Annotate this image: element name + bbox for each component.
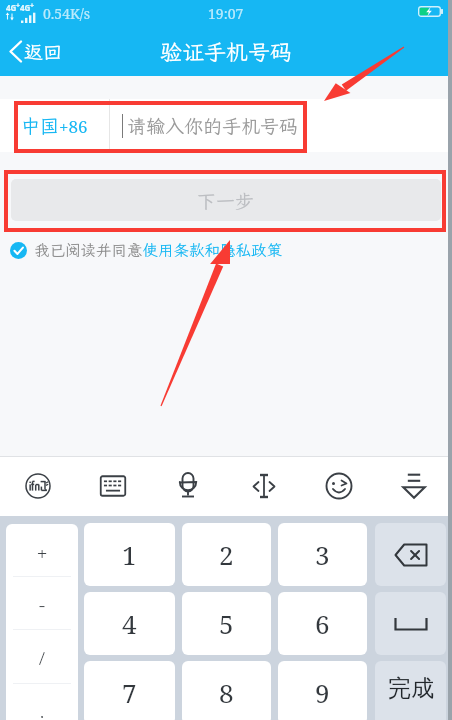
staticText: + (16, 1, 21, 11)
staticText: 3 (315, 537, 330, 572)
button[interactable]: 我已阅读并同意使用条款和隐私政策 (10, 240, 283, 260)
button[interactable]: Hide keyboard (377, 457, 451, 515)
staticText: 中国+86 (21, 113, 88, 138)
button[interactable]: Move cursor (227, 457, 301, 515)
button[interactable]: Delete (375, 523, 446, 586)
staticText: 0.54K/s (43, 4, 91, 23)
staticText: 4G (6, 2, 17, 13)
button[interactable]: 返回 (0, 26, 75, 76)
staticText: 6 (315, 606, 330, 641)
staticText: 7 (122, 675, 137, 710)
staticText: + (37, 540, 48, 562)
staticText: 4 (122, 606, 137, 641)
button[interactable]: Space (375, 592, 446, 655)
button[interactable]: iFlytek input method (1, 457, 75, 515)
button[interactable]: 8 (182, 661, 271, 720)
staticText: - (39, 593, 45, 615)
staticText: + (30, 1, 35, 11)
staticText: 返回 (24, 39, 63, 64)
staticText: 1 (122, 537, 137, 572)
button[interactable]: - (6, 577, 78, 630)
staticText: 8 (219, 675, 234, 710)
staticText: 下一步 (197, 188, 255, 213)
staticText: . (39, 700, 45, 720)
staticText: 4G (20, 2, 31, 13)
button[interactable]: 下一步 (11, 179, 441, 221)
button[interactable]: 2 (182, 523, 271, 586)
staticText: 5 (219, 606, 234, 641)
button[interactable]: Emoji (302, 457, 376, 515)
staticText: 19:07 (208, 4, 244, 23)
staticText: 我已阅读并同意使用条款和隐私政策 (34, 240, 283, 260)
button[interactable]: 5 (182, 592, 271, 655)
staticText: 完成 (388, 674, 434, 703)
button[interactable]: 7 (84, 661, 175, 720)
button[interactable]: 4 (84, 592, 175, 655)
staticText: 请输入你的手机号码 (127, 113, 299, 138)
button[interactable]: . (6, 684, 78, 720)
button[interactable]: 1 (84, 523, 175, 586)
button[interactable]: 3 (278, 523, 367, 586)
button[interactable]: / (6, 630, 78, 684)
staticText: 验证手机号码 (160, 37, 293, 66)
staticText: 2 (219, 537, 234, 572)
button[interactable]: Voice input (151, 457, 225, 515)
button[interactable]: + (6, 524, 78, 577)
button[interactable]: 完成 (375, 661, 446, 720)
button[interactable]: 9 (278, 661, 367, 720)
button[interactable]: 6 (278, 592, 367, 655)
button[interactable]: Keyboard layout (76, 457, 150, 515)
staticText: 9 (315, 675, 330, 710)
staticText: / (39, 646, 45, 668)
button[interactable]: 中国+86 (0, 99, 109, 152)
